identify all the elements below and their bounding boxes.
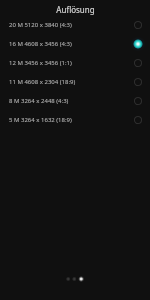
button[interactable]: Page indicator, page 3 of 3: [0, 272, 150, 286]
button[interactable]: 16 M 4608 x 3456 (4:3): [0, 34, 150, 53]
other: Not selected: [128, 110, 147, 129]
other: Not selected: [128, 15, 147, 34]
other: Not selected: [128, 53, 147, 72]
other: Not selected: [128, 91, 147, 110]
staticText: 16 M 4608 x 3456 (4:3): [9, 40, 72, 48]
button[interactable]: 8 M 3264 x 2448 (4:3): [0, 91, 150, 110]
staticText: 20 M 5120 x 3840 (4:3): [9, 21, 72, 29]
button[interactable]: 11 M 4608 x 2304 (18:9): [0, 72, 150, 91]
staticText: 8 M 3264 x 2448 (4:3): [9, 97, 69, 105]
other: Selected: [128, 34, 147, 53]
staticText: 5 M 3264 x 1632 (18:9): [9, 116, 72, 124]
other: Not selected: [128, 72, 147, 91]
button[interactable]: 20 M 5120 x 3840 (4:3): [0, 15, 150, 34]
staticText: 11 M 4608 x 2304 (18:9): [9, 78, 76, 86]
button[interactable]: 5 M 3264 x 1632 (18:9): [0, 110, 150, 129]
button[interactable]: 12 M 3456 x 3456 (1:1): [0, 53, 150, 72]
staticText: 12 M 3456 x 3456 (1:1): [9, 59, 72, 67]
staticText: Auflösung: [56, 4, 95, 15]
